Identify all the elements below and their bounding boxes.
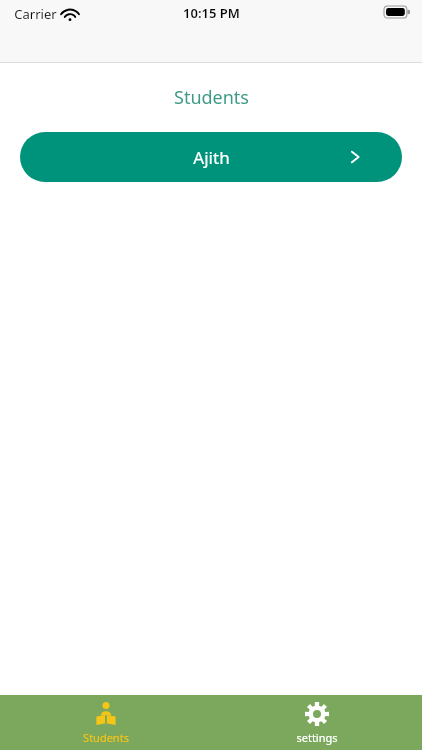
other: Students bbox=[93, 701, 119, 727]
other: Wi-Fi bbox=[63, 9, 77, 20]
staticText: Carrier bbox=[14, 5, 57, 23]
staticText: Students bbox=[83, 730, 129, 745]
other: Open bbox=[348, 150, 362, 164]
staticText: 10:15 PM bbox=[183, 4, 240, 22]
button[interactable]: Settings bbox=[211, 695, 422, 750]
other: Settings bbox=[304, 701, 330, 727]
button[interactable]: Ajith bbox=[20, 132, 402, 182]
button[interactable]: Students bbox=[0, 695, 211, 750]
other: Battery bbox=[384, 6, 410, 18]
staticText: Ajith bbox=[193, 146, 230, 169]
staticText: Students bbox=[174, 85, 249, 110]
staticText: settings bbox=[296, 730, 338, 745]
